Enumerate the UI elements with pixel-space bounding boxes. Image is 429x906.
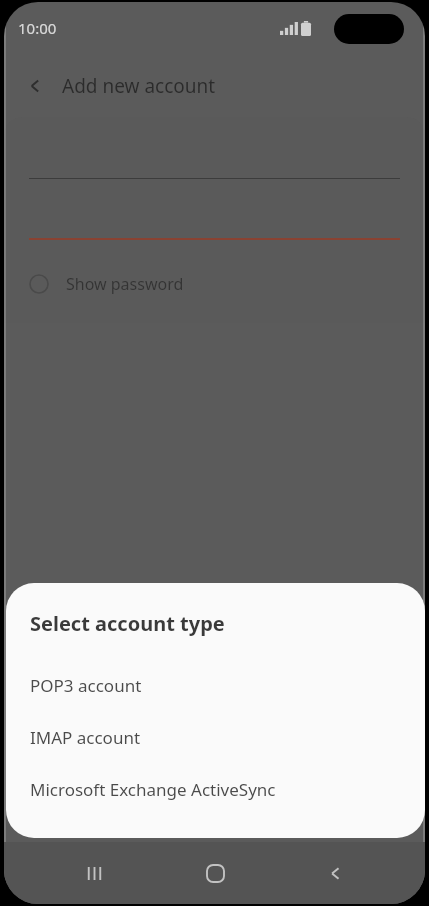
staticText: 10:00 xyxy=(18,18,57,38)
button[interactable]: IMAP account xyxy=(6,711,425,763)
staticText: Show password xyxy=(66,273,184,295)
staticText: Select account type xyxy=(30,610,225,637)
button[interactable]: Recent apps xyxy=(63,842,125,904)
staticText: Microsoft Exchange ActiveSync xyxy=(30,778,276,801)
button[interactable]: POP3 account xyxy=(6,659,425,711)
button[interactable]: Show password xyxy=(4,262,425,306)
button[interactable]: Back xyxy=(304,842,366,904)
button[interactable]: Back xyxy=(18,68,54,104)
button[interactable]: Microsoft Exchange ActiveSync xyxy=(6,763,425,815)
staticText: IMAP account xyxy=(30,726,141,749)
staticText: POP3 account xyxy=(30,674,142,697)
button[interactable]: Home xyxy=(184,842,246,904)
staticText: Add new account xyxy=(62,73,216,99)
